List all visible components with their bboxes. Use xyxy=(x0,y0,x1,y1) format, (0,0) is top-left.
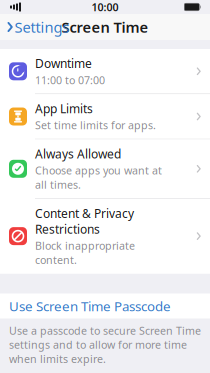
staticText: Set time limits for apps. xyxy=(35,118,156,132)
staticText: App Limits xyxy=(35,101,93,117)
staticText: Content & Privacy Restrictions xyxy=(35,205,134,237)
button[interactable]: Settings xyxy=(0,12,75,42)
button[interactable]: Always Allowed xyxy=(0,139,210,199)
staticText: Screen Time xyxy=(61,17,148,37)
staticText: Use a passcode to secure Screen Time set… xyxy=(9,323,201,366)
button[interactable]: Downtime xyxy=(0,49,210,94)
staticText: Settings xyxy=(15,17,70,37)
staticText: Use Screen Time Passcode xyxy=(9,297,171,315)
staticText: Always Allowed xyxy=(35,146,121,162)
staticText: Downtime xyxy=(35,55,92,71)
button[interactable]: Content & Privacy Restrictions xyxy=(0,199,210,273)
staticText: Choose apps you want at all times. xyxy=(35,163,162,192)
button[interactable]: App Limits xyxy=(0,94,210,139)
staticText: 11:00 to 07:00 xyxy=(35,73,105,87)
staticText: Block inappropriate content. xyxy=(35,239,135,267)
staticText: 10:00 xyxy=(91,0,118,14)
button[interactable]: Use Screen Time Passcode xyxy=(0,293,210,318)
